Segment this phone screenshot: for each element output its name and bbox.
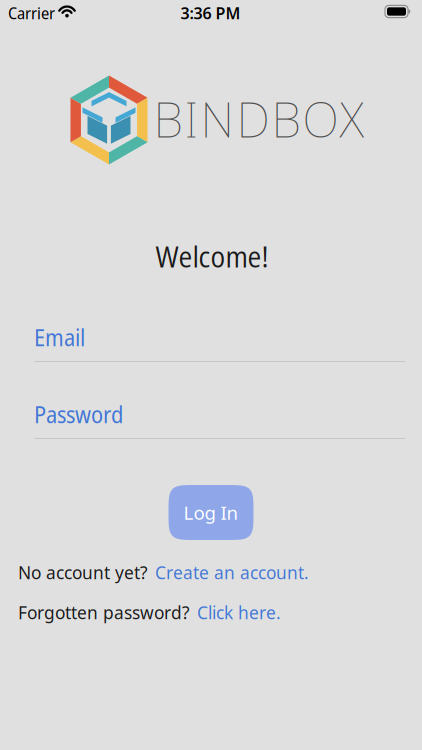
staticText: BINDBOX	[153, 87, 363, 151]
button[interactable]: Click here.	[197, 601, 281, 624]
staticText: Password	[34, 399, 123, 430]
button[interactable]: Create an account.	[155, 561, 309, 584]
button[interactable]: Password	[34, 399, 405, 439]
staticText: Email	[34, 322, 85, 353]
staticText: 3:36 PM	[180, 2, 240, 24]
staticText: Log In	[183, 500, 238, 525]
staticText: Create an account.	[155, 561, 309, 584]
staticText: Click here.	[197, 601, 281, 624]
button[interactable]: Email	[34, 322, 405, 362]
staticText: Welcome!	[155, 236, 268, 276]
staticText: Carrier	[8, 2, 55, 24]
staticText: Forgotten password?	[18, 601, 190, 624]
button[interactable]: Log In	[168, 485, 253, 540]
staticText: No account yet?	[18, 561, 148, 584]
